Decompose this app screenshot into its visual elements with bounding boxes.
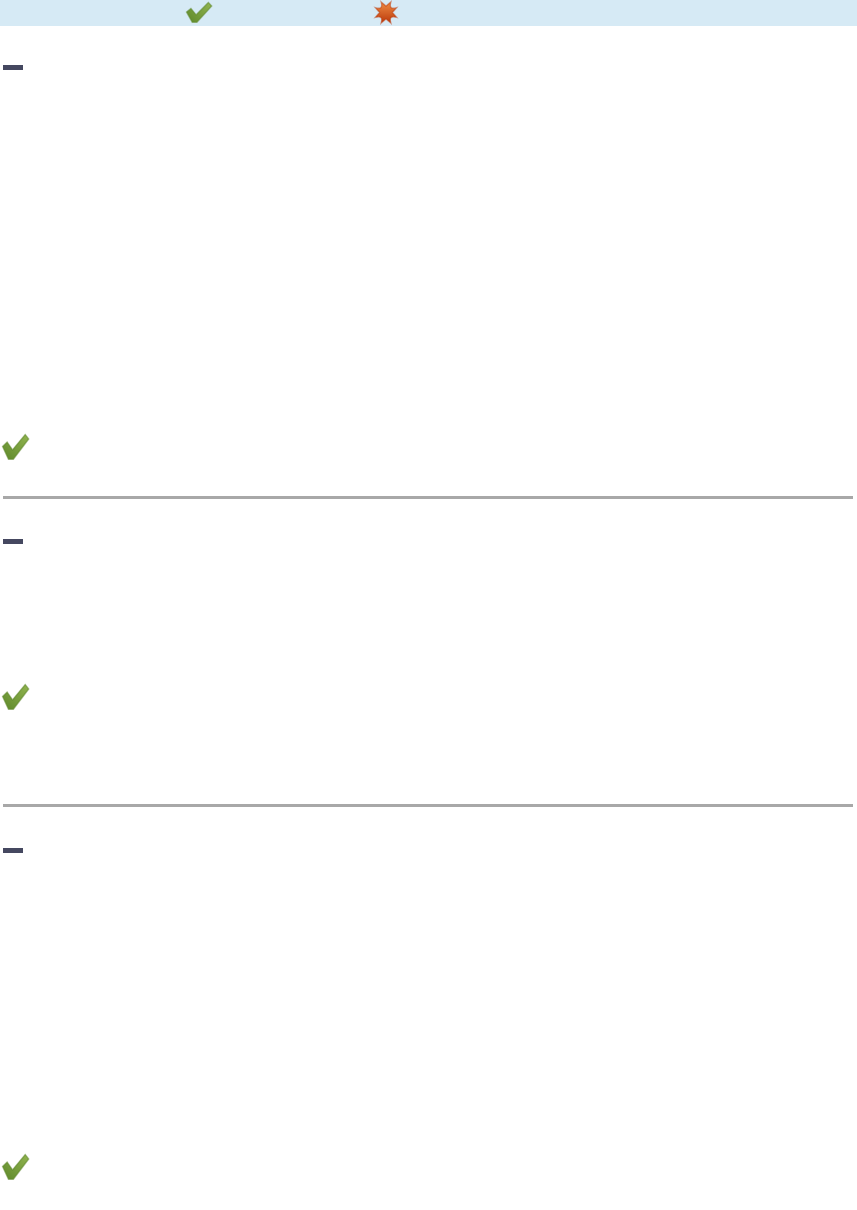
button[interactable]: Failed	[375, 2, 397, 23]
button[interactable]: Passed	[2, 684, 29, 710]
button[interactable]: Passed	[2, 1154, 29, 1180]
button[interactable]: Passed	[2, 434, 29, 460]
button[interactable]: Passed	[186, 2, 212, 23]
